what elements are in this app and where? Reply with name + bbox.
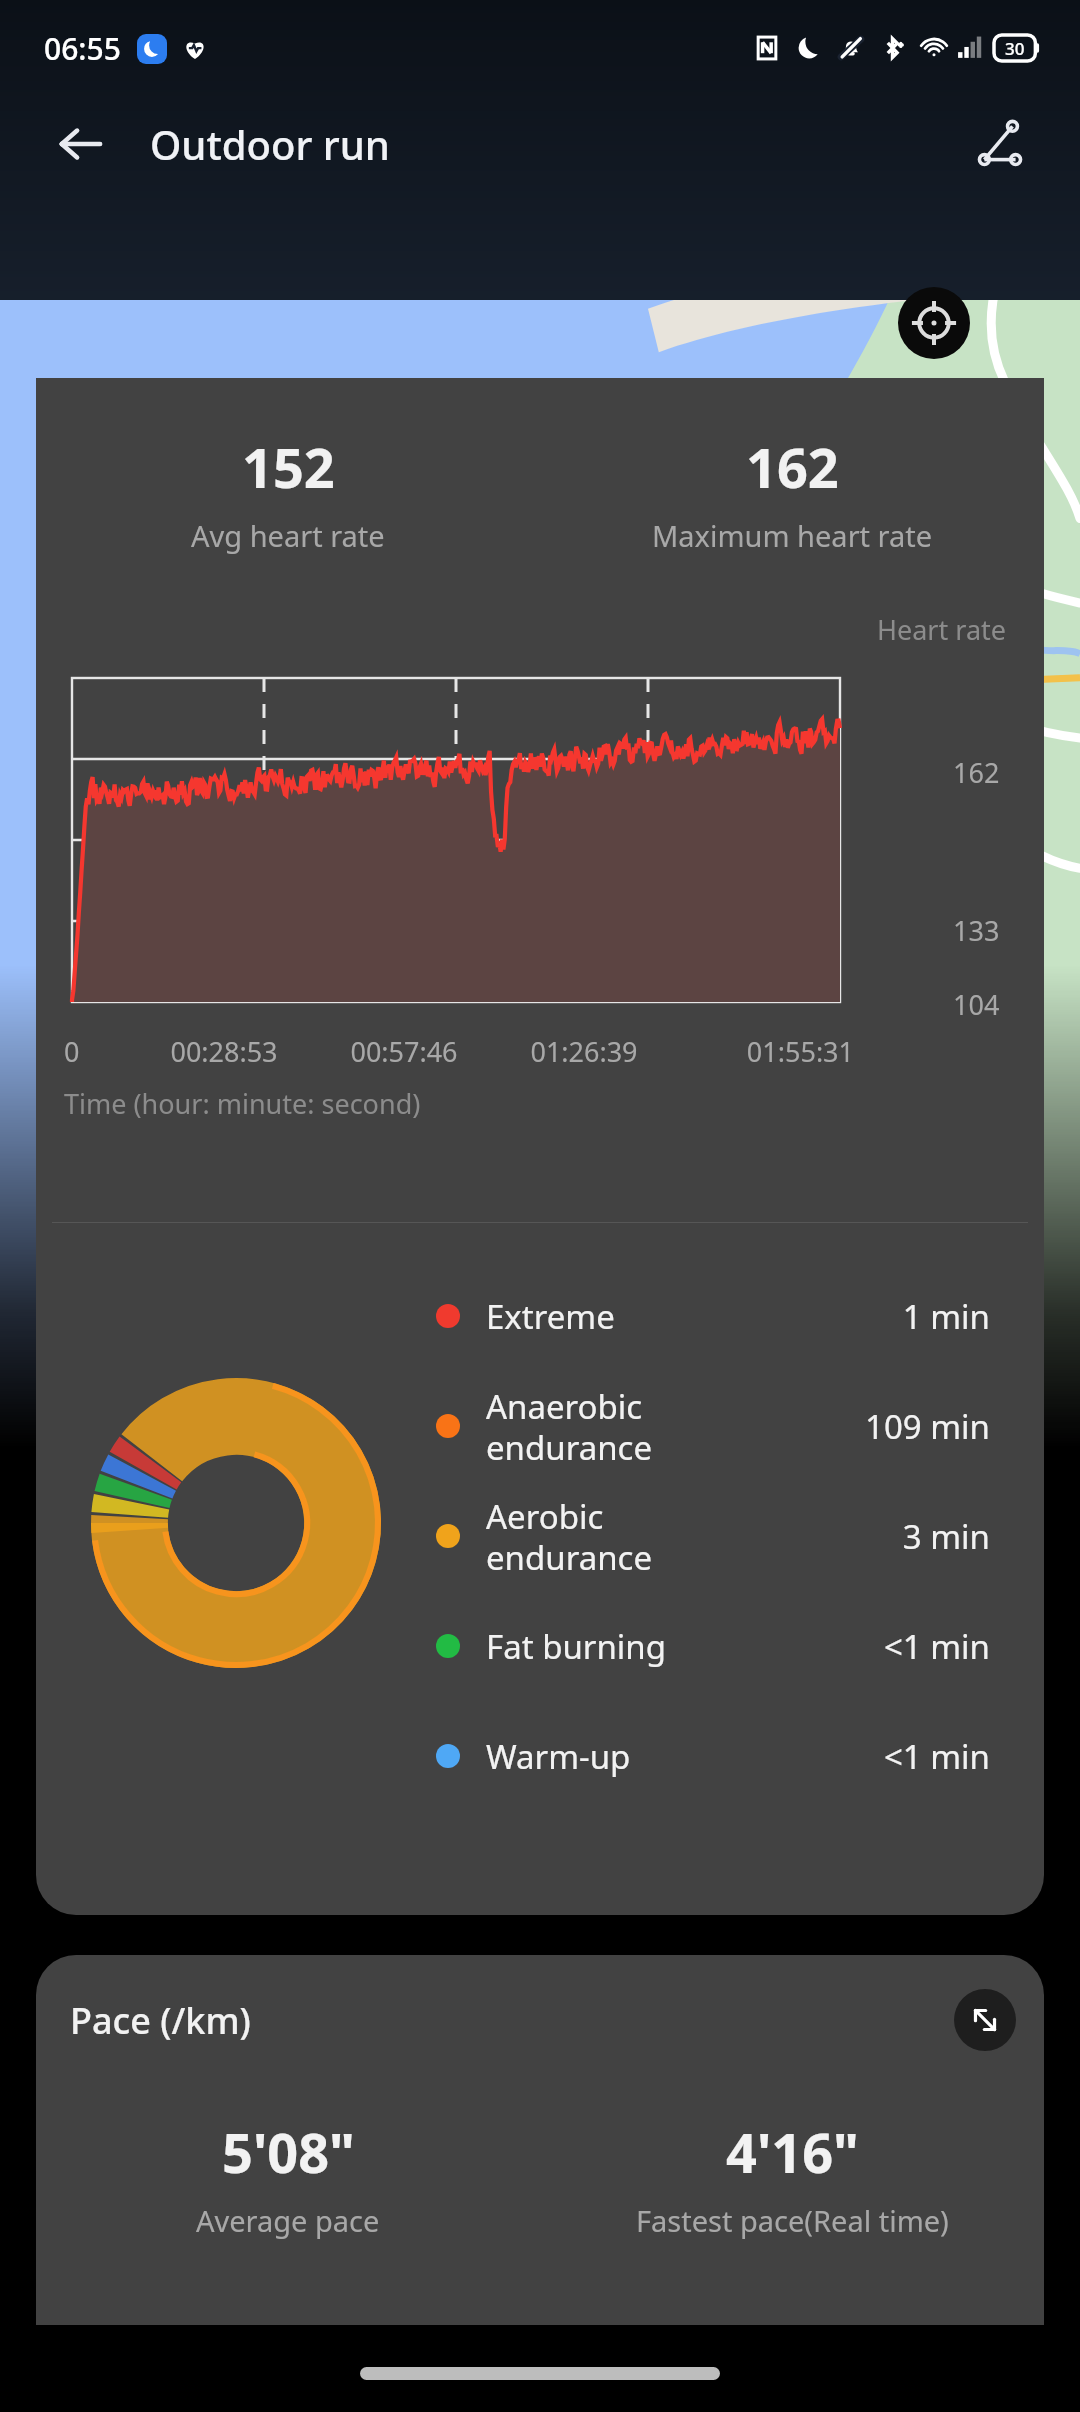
staticText: Avg heart rate xyxy=(191,516,385,555)
staticText: Maximum heart rate xyxy=(652,516,933,555)
staticText: Aerobic endurance xyxy=(486,1494,902,1579)
staticText: Fastest pace(Real time) xyxy=(636,2201,949,2240)
staticText: 00:28:53 xyxy=(134,1033,314,1070)
button[interactable]: Warm-up xyxy=(436,1701,990,1811)
staticText: Pace (/km) xyxy=(70,1996,251,2045)
button[interactable]: Fat burning xyxy=(436,1591,990,1701)
staticText: 133 xyxy=(953,912,1000,949)
button[interactable]: Back xyxy=(48,112,112,176)
staticText: 30 xyxy=(1005,37,1025,60)
staticText: 4'16" xyxy=(726,2115,859,2189)
staticText: Heart rate xyxy=(36,611,1006,648)
staticText: 1 min xyxy=(902,1294,990,1339)
button[interactable]: Extreme xyxy=(436,1261,990,1371)
staticText: 0 xyxy=(64,1033,134,1070)
staticText: 01:26:39 xyxy=(494,1033,674,1070)
button[interactable]: Expand pace chart xyxy=(954,1989,1016,2051)
staticText: <1 min xyxy=(883,1624,990,1669)
staticText: Warm-up xyxy=(486,1734,883,1779)
staticText: Average pace xyxy=(196,2201,380,2240)
staticText: Extreme xyxy=(486,1294,902,1339)
button[interactable]: Aerobic endurance xyxy=(436,1481,990,1591)
button[interactable]: Center map xyxy=(898,287,970,359)
staticText: 162 xyxy=(746,430,839,504)
staticText: 01:55:31 xyxy=(674,1033,854,1070)
staticText: 109 min xyxy=(865,1404,990,1449)
staticText: 00:57:46 xyxy=(314,1033,494,1070)
staticText: <1 min xyxy=(883,1734,990,1779)
staticText: 162 xyxy=(953,754,1000,791)
staticText: 3 min xyxy=(902,1514,990,1559)
staticText: 5'08" xyxy=(222,2115,355,2189)
staticText: 06:55 xyxy=(44,28,121,69)
staticText: 152 xyxy=(242,430,335,504)
staticText: Time (hour: minute: second) xyxy=(64,1085,421,1122)
staticText: Outdoor run xyxy=(150,117,390,171)
button[interactable]: Anaerobic endurance xyxy=(436,1371,990,1481)
button[interactable]: Share route xyxy=(964,108,1036,180)
staticText: Anaerobic endurance xyxy=(486,1384,865,1469)
staticText: Fat burning xyxy=(486,1624,883,1669)
staticText: 104 xyxy=(953,986,1000,1023)
